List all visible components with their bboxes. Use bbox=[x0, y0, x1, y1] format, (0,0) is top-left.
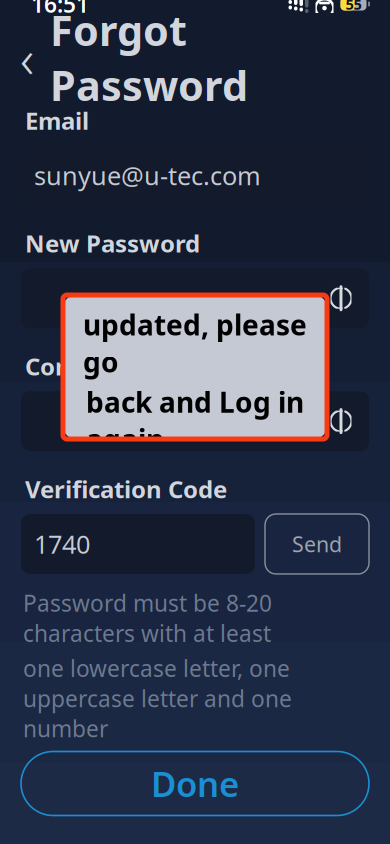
staticText: Send bbox=[292, 530, 342, 558]
staticText: OK bbox=[174, 483, 215, 522]
staticText: 55 bbox=[345, 0, 361, 14]
button[interactable]: Show password bbox=[321, 278, 361, 318]
staticText: Done bbox=[151, 760, 239, 806]
staticText: 16:51 bbox=[31, 0, 89, 19]
button[interactable]: Send bbox=[265, 514, 369, 574]
staticText: updated, please go bbox=[83, 306, 307, 380]
staticText: Confirm Password bbox=[25, 350, 241, 382]
staticText: Forgot Password bbox=[50, 3, 248, 112]
staticText: New Password bbox=[25, 227, 200, 259]
staticText: one lowercase letter, one uppercase lett… bbox=[23, 653, 292, 743]
staticText: Verification Code bbox=[25, 473, 227, 505]
button[interactable]: Back bbox=[10, 32, 44, 82]
staticText: ‹ bbox=[20, 22, 34, 93]
staticText: 1740 bbox=[34, 527, 90, 561]
button[interactable]: Show password bbox=[321, 401, 361, 441]
staticText: back and Log in again bbox=[86, 383, 304, 458]
staticText: The password has been bbox=[70, 229, 319, 303]
button[interactable]: Done bbox=[21, 751, 369, 815]
staticText: Email bbox=[25, 104, 89, 136]
button[interactable]: OK bbox=[63, 478, 327, 527]
staticText: sunyue@u-tec.com bbox=[34, 159, 261, 192]
staticText: Password must be 8-20 characters with at… bbox=[23, 588, 272, 648]
